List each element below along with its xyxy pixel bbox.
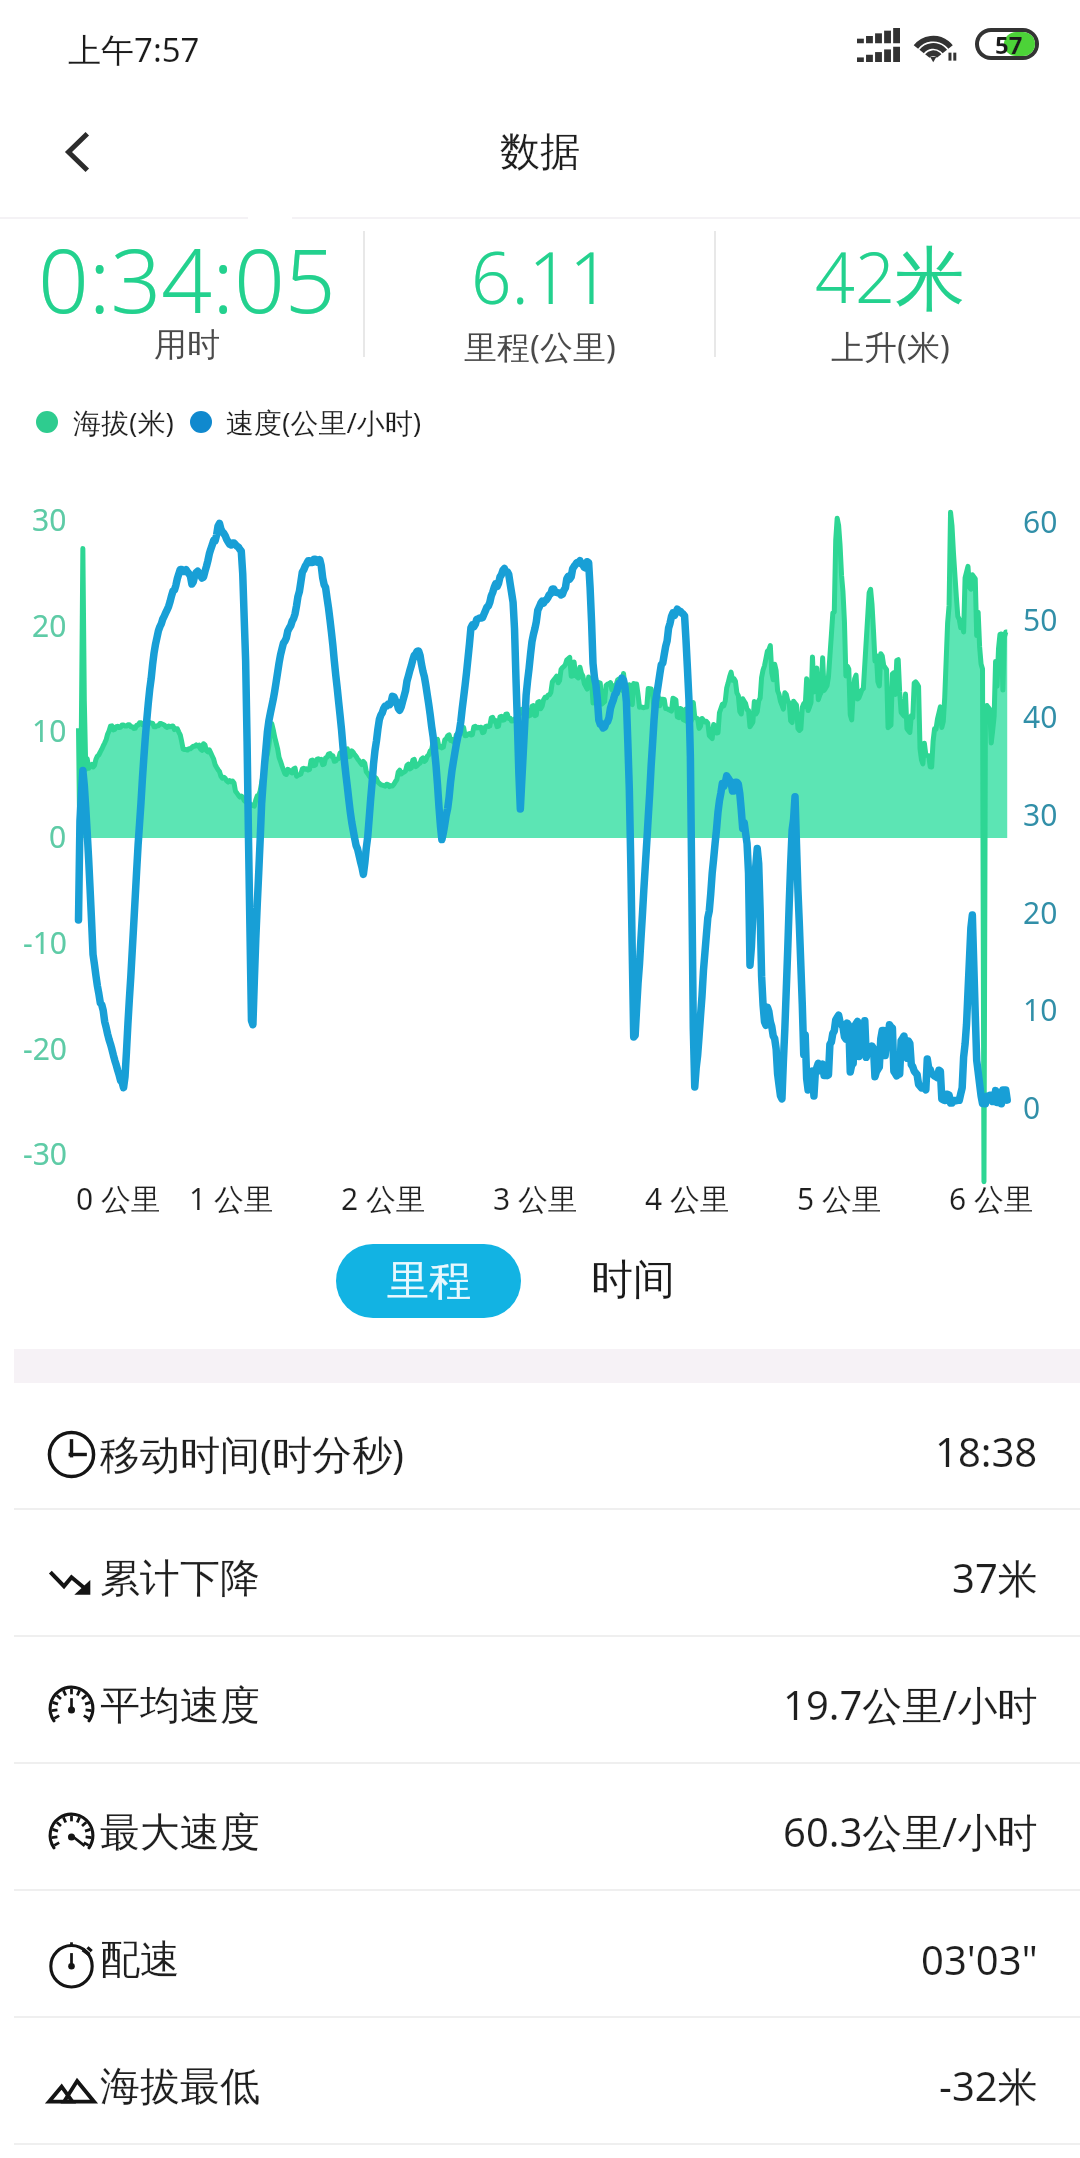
staticText: 海拔最低	[100, 2061, 260, 2111]
staticText: 0	[1023, 1087, 1041, 1128]
staticText: 4 公里	[645, 1178, 730, 1219]
staticText: -30	[23, 1133, 67, 1174]
button[interactable]: 时间	[553, 1244, 713, 1317]
button[interactable]: 移动时间(时分秒)	[0, 1383, 1080, 1510]
staticText: 配速	[100, 1934, 180, 1984]
staticText: 用时	[154, 324, 220, 366]
staticText: 时间	[591, 1254, 675, 1307]
staticText: 60	[1023, 501, 1058, 542]
staticText: 30	[32, 499, 67, 540]
staticText: 6.11	[471, 228, 610, 325]
button[interactable]: 里程	[336, 1244, 521, 1318]
staticText: 18:38	[935, 1424, 1038, 1478]
staticText: 速度(公里/小时)	[226, 403, 422, 441]
staticText: 10	[32, 710, 67, 751]
staticText: 累计下降	[100, 1553, 260, 1603]
staticText: 1 公里	[189, 1178, 274, 1219]
staticText: 0	[49, 816, 67, 857]
staticText: 37米	[952, 1550, 1038, 1605]
staticText: 30	[1023, 794, 1058, 835]
staticText: -20	[23, 1028, 67, 1069]
staticText: 42米	[815, 228, 965, 324]
staticText: 0:34:05	[38, 218, 336, 339]
staticText: -32米	[939, 2058, 1038, 2113]
staticText: 6 公里	[949, 1178, 1034, 1219]
button[interactable]: 累计下降	[0, 1510, 1080, 1637]
button[interactable]: 最大速度	[0, 1764, 1080, 1891]
staticText: 里程(公里)	[464, 324, 616, 369]
staticText: 2 公里	[341, 1178, 426, 1219]
button[interactable]: 海拔最低	[0, 2018, 1080, 2145]
staticText: 最大速度	[100, 1807, 260, 1857]
button[interactable]: 配速	[0, 1891, 1080, 2018]
button[interactable]: Back	[34, 106, 120, 198]
staticText: 60.3公里/小时	[783, 1804, 1038, 1859]
staticText: 50	[1023, 599, 1058, 640]
staticText: 20	[1023, 892, 1058, 933]
staticText: 上午7:57	[68, 27, 200, 72]
staticText: -10	[23, 922, 67, 963]
staticText: 10	[1023, 989, 1058, 1030]
staticText: 里程	[387, 1255, 471, 1308]
staticText: 40	[1023, 696, 1058, 737]
staticText: 5 公里	[797, 1178, 882, 1219]
button[interactable]: 平均速度	[0, 1637, 1080, 1764]
staticText: 上升(米)	[831, 324, 950, 369]
staticText: 03'03"	[921, 1932, 1038, 1986]
staticText: 20	[32, 605, 67, 646]
staticText: 数据	[500, 126, 580, 176]
staticText: 海拔(米)	[73, 403, 174, 441]
staticText: 0 公里	[76, 1178, 161, 1219]
staticText: 19.7公里/小时	[783, 1677, 1038, 1732]
staticText: 3 公里	[493, 1178, 578, 1219]
staticText: 平均速度	[100, 1680, 260, 1730]
staticText: 57	[995, 28, 1023, 60]
staticText: 移动时间(时分秒)	[100, 1426, 404, 1481]
